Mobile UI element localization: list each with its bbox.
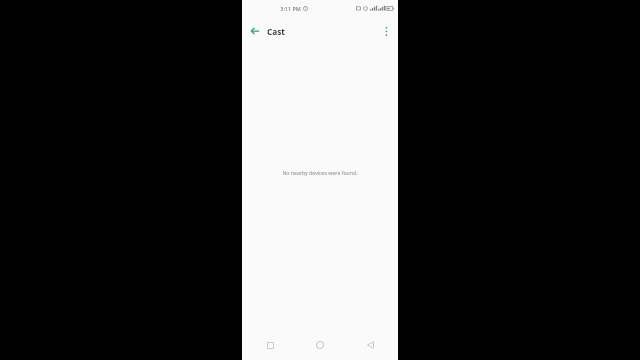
staticText: 3:11 PM (280, 5, 301, 12)
button[interactable]: Back (357, 330, 383, 360)
button[interactable]: Recent apps (257, 330, 283, 360)
staticText: Cast (267, 26, 285, 37)
button[interactable]: Back (246, 22, 264, 40)
staticText: No nearby devices were found. (282, 169, 358, 176)
button[interactable]: More options (377, 22, 395, 40)
button[interactable]: Home (307, 330, 333, 360)
